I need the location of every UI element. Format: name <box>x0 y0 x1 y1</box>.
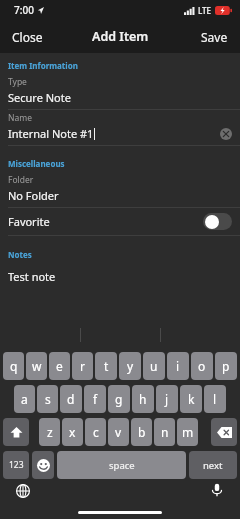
button[interactable]: Folder <box>0 172 240 207</box>
staticText: 7:00 <box>14 3 34 17</box>
staticText: m <box>182 424 194 440</box>
button[interactable]: m <box>177 418 198 446</box>
staticText: space <box>109 459 135 472</box>
button[interactable]: c <box>85 418 106 446</box>
staticText: u <box>150 358 158 374</box>
button[interactable]: Close <box>0 23 55 51</box>
button[interactable]: space <box>57 451 186 479</box>
button[interactable]: v <box>108 418 129 446</box>
staticText: w <box>32 358 42 374</box>
button[interactable]: o <box>191 352 213 380</box>
button[interactable]: Switch keyboard <box>16 484 30 498</box>
staticText: Miscellaneous <box>8 158 65 169</box>
button[interactable]: l <box>204 385 226 413</box>
button[interactable]: Backspace <box>211 418 237 446</box>
button[interactable]: q <box>3 352 24 380</box>
staticText: Notes <box>8 249 32 260</box>
button[interactable]: f <box>84 385 106 413</box>
staticText: n <box>161 424 169 440</box>
button[interactable]: Name <box>0 110 240 145</box>
staticText: y <box>127 358 134 374</box>
staticText: s <box>45 391 51 407</box>
staticText: Add Item <box>92 28 149 45</box>
staticText: Folder <box>8 174 34 186</box>
button[interactable]: x <box>62 418 83 446</box>
staticText: b <box>138 424 146 440</box>
staticText: t <box>104 358 109 374</box>
staticText: d <box>67 391 75 407</box>
staticText: Save <box>201 29 228 45</box>
staticText: Name <box>8 112 32 124</box>
button[interactable]: j <box>156 385 178 413</box>
staticText: q <box>10 358 18 374</box>
button[interactable]: Clear text <box>220 128 232 140</box>
staticText: h <box>139 391 147 407</box>
button[interactable]: a <box>14 385 35 413</box>
button[interactable]: n <box>154 418 175 446</box>
button[interactable]: r <box>72 352 93 380</box>
button[interactable]: i <box>167 352 189 380</box>
button[interactable]: y <box>119 352 141 380</box>
staticText: Close <box>12 29 43 45</box>
button[interactable]: k <box>180 385 202 413</box>
button[interactable]: z <box>39 418 60 446</box>
staticText: r <box>80 358 85 374</box>
button[interactable]: Emoji <box>32 451 54 479</box>
button[interactable]: d <box>60 385 82 413</box>
button[interactable]: Type <box>0 74 240 109</box>
staticText: No Folder <box>8 188 59 203</box>
button[interactable]: 123 <box>3 451 29 479</box>
staticText: p <box>222 358 230 374</box>
button[interactable]: u <box>143 352 165 380</box>
staticText: z <box>47 424 53 440</box>
staticText: next <box>203 459 223 472</box>
staticText: LTE <box>198 5 212 16</box>
button[interactable]: Favorite toggle <box>203 213 232 230</box>
button[interactable]: Save <box>189 23 240 51</box>
button[interactable]: h <box>132 385 154 413</box>
staticText: c <box>93 424 99 440</box>
staticText: Internal Note #1 <box>8 126 94 141</box>
button[interactable]: w <box>26 352 47 380</box>
staticText: Favorite <box>8 214 50 229</box>
button[interactable]: next <box>189 451 237 479</box>
button[interactable]: Shift <box>3 418 29 446</box>
button[interactable]: Dictate <box>210 483 224 497</box>
staticText: j <box>165 391 169 407</box>
button[interactable]: b <box>131 418 152 446</box>
staticText: Test note <box>8 269 56 284</box>
staticText: a <box>21 391 28 407</box>
staticText: v <box>115 424 122 440</box>
other: Shift <box>10 426 23 439</box>
other: Backspace <box>217 427 232 438</box>
button[interactable]: s <box>37 385 58 413</box>
staticText: i <box>176 358 180 374</box>
staticText: Item Information <box>8 60 78 71</box>
staticText: k <box>188 391 195 407</box>
button[interactable]: t <box>95 352 117 380</box>
button[interactable]: Favorite <box>0 208 240 235</box>
staticText: f <box>93 391 98 407</box>
staticText: 123 <box>9 459 24 471</box>
staticText: Secure Note <box>8 90 71 105</box>
staticText: x <box>69 424 76 440</box>
staticText: l <box>213 391 217 407</box>
button[interactable]: e <box>49 352 70 380</box>
staticText: Type <box>8 76 27 88</box>
staticText: e <box>56 358 63 374</box>
button[interactable]: p <box>215 352 237 380</box>
staticText: g <box>115 391 123 407</box>
button[interactable]: g <box>108 385 130 413</box>
staticText: o <box>198 358 206 374</box>
